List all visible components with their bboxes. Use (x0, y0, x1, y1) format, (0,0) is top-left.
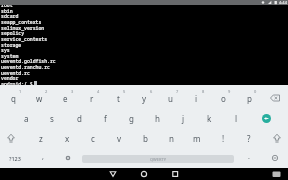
staticText: x (65, 133, 70, 144)
button[interactable]: v (107, 128, 131, 148)
staticText: QWERTY (150, 157, 167, 162)
staticText: ueventd.ranchu.rc (1, 64, 50, 71)
staticText: b (143, 133, 148, 144)
staticText: s (50, 113, 54, 124)
staticText: c (91, 133, 95, 144)
staticText: y (142, 93, 147, 104)
staticText: k (207, 113, 212, 124)
staticText: z (39, 133, 43, 144)
button[interactable]: d (67, 108, 91, 128)
staticText: o (221, 93, 226, 104)
button[interactable] (165, 168, 185, 180)
button[interactable]: e (53, 88, 77, 108)
button[interactable] (262, 114, 271, 123)
button[interactable]: b (133, 128, 157, 148)
button[interactable] (263, 88, 287, 108)
staticText: ! (222, 133, 225, 144)
staticText: vendor (1, 75, 19, 82)
staticText: w (36, 93, 43, 104)
button[interactable] (0, 128, 23, 148)
button[interactable] (58, 148, 78, 168)
staticText: j (182, 113, 185, 124)
button[interactable] (265, 148, 285, 168)
button[interactable]: i (184, 88, 208, 108)
staticText: 4 (97, 89, 100, 94)
staticText: 3 (71, 89, 74, 94)
button[interactable]: m (185, 128, 209, 148)
staticText: r (90, 93, 94, 104)
staticText: l (235, 113, 238, 124)
staticText: e (63, 93, 68, 104)
button[interactable] (134, 168, 154, 180)
button[interactable]: u (158, 88, 182, 108)
staticText: selinux_version (1, 25, 45, 32)
staticText: g (129, 113, 134, 124)
button[interactable]: j (171, 108, 195, 128)
button[interactable]: QWERTY (82, 155, 234, 163)
staticText: storage (1, 42, 22, 49)
button[interactable]: 4:44 (0, 0, 288, 5)
staticText: ueventd.rc (1, 70, 30, 77)
staticText: h (155, 113, 160, 124)
button[interactable]: z (29, 128, 53, 148)
button[interactable]: h (145, 108, 169, 128)
button[interactable]: o (211, 88, 235, 108)
staticText: 1 (19, 89, 22, 94)
staticText: d (77, 113, 82, 124)
button[interactable]: s (40, 108, 64, 128)
button[interactable]: t (106, 88, 130, 108)
button[interactable]: f (93, 108, 117, 128)
staticText: service_contexts (1, 36, 48, 43)
button[interactable]: . (237, 147, 261, 167)
button[interactable] (103, 168, 123, 180)
button[interactable]: , (31, 147, 55, 167)
button[interactable] (265, 128, 288, 148)
staticText: ? (247, 133, 251, 144)
staticText: n (169, 133, 174, 144)
staticText: 0 (254, 89, 257, 94)
staticText: 4:44 (279, 0, 287, 5)
staticText: seapp_contexts (1, 19, 42, 26)
button[interactable]: k (197, 108, 221, 128)
staticText: i (195, 93, 198, 104)
button[interactable]: ?123 (2, 148, 28, 168)
button[interactable]: y (132, 88, 156, 108)
staticText: q (11, 93, 16, 104)
staticText: m (193, 133, 201, 144)
button[interactable]: ? (237, 128, 261, 148)
staticText: ?123 (9, 155, 21, 162)
staticText: android:/ $ (1, 81, 33, 88)
staticText: p (247, 93, 252, 104)
staticText: sys (1, 47, 10, 54)
staticText: t (117, 93, 120, 104)
staticText: sdcard (1, 13, 19, 20)
button[interactable]: r (80, 88, 104, 108)
staticText: a (24, 113, 29, 124)
staticText: 9 (228, 89, 231, 94)
button[interactable]: n (159, 128, 183, 148)
staticText: 8 (202, 89, 205, 94)
staticText: 7 (176, 89, 179, 94)
button[interactable]: l (224, 108, 248, 128)
button[interactable]: a (14, 108, 38, 128)
button[interactable] (268, 168, 284, 180)
button[interactable]: x (55, 128, 79, 148)
button[interactable]: ! (211, 128, 235, 148)
staticText: 2 (45, 89, 48, 94)
staticText: sbin (1, 8, 13, 15)
button[interactable]: w (27, 88, 51, 108)
button[interactable]: c (81, 128, 105, 148)
staticText: u (168, 93, 173, 104)
staticText: 5 (123, 89, 126, 94)
staticText: f (104, 113, 107, 124)
staticText: ueventd.goldfish.rc (1, 58, 56, 65)
button[interactable]: p (237, 88, 261, 108)
staticText: . (248, 152, 250, 162)
staticText: root (1, 2, 13, 9)
button[interactable]: g (119, 108, 143, 128)
button[interactable]: q (1, 88, 25, 108)
staticText: , (42, 152, 44, 162)
staticText: system (1, 53, 19, 60)
staticText: sepolicy (1, 30, 25, 37)
staticText: 6 (150, 89, 153, 94)
